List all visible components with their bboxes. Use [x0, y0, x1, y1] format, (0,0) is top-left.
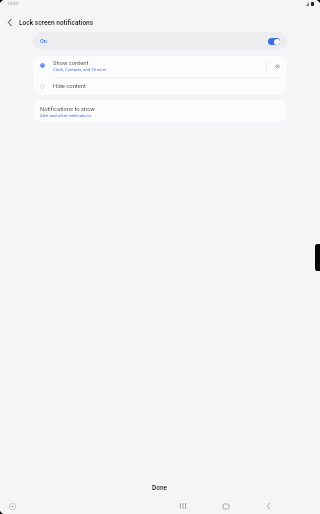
button[interactable]: On — [33, 32, 287, 50]
button[interactable]: Navigate up — [0, 12, 20, 32]
staticText: Notifications to show — [40, 106, 95, 113]
staticText: Hide content — [53, 83, 86, 90]
staticText: Lock screen notifications — [19, 19, 94, 27]
staticText: Done — [152, 484, 168, 492]
staticText: Clock, Contacts, and 18 more — [53, 67, 107, 72]
staticText: Show content — [53, 60, 89, 67]
button[interactable]: Done — [140, 482, 180, 494]
button[interactable]: Recents — [176, 499, 190, 513]
button[interactable]: Home — [219, 499, 233, 513]
staticText: Alert and silent notifications — [40, 113, 91, 118]
staticText: 10:00 — [7, 1, 18, 6]
staticText: On — [40, 38, 47, 44]
button[interactable]: Hide content — [33, 77, 287, 95]
button[interactable]: Notifications to show — [33, 100, 287, 122]
button[interactable]: Settings — [267, 56, 287, 77]
button[interactable]: Hide keyboard — [5, 499, 19, 513]
button[interactable]: Show content — [33, 56, 287, 77]
button[interactable]: Back — [261, 499, 275, 513]
